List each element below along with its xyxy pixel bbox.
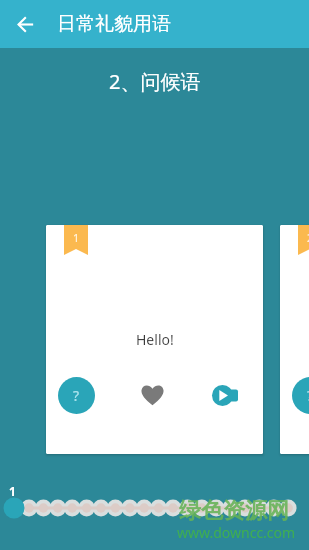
button[interactable]: Play audio (212, 383, 244, 408)
button[interactable]: 2 (280, 225, 309, 454)
staticText: ? (73, 386, 80, 405)
staticText: 2、问候语 (109, 68, 201, 95)
staticText: 1 (73, 230, 80, 245)
staticText: ? (307, 386, 309, 405)
staticText: 日常礼貌用语 (57, 12, 171, 36)
staticText: Hello! (136, 330, 174, 349)
staticText: 绿色资源网 (179, 497, 289, 525)
staticText: www.downcc.com (177, 523, 296, 542)
button[interactable]: 1 (46, 225, 263, 454)
button[interactable]: Favorite (141, 383, 164, 406)
button[interactable]: Help (292, 377, 309, 414)
staticText: 2 (307, 230, 309, 245)
button[interactable]: Help (58, 377, 95, 414)
button[interactable]: Back (0, 0, 48, 48)
staticText: 1 (9, 483, 16, 499)
